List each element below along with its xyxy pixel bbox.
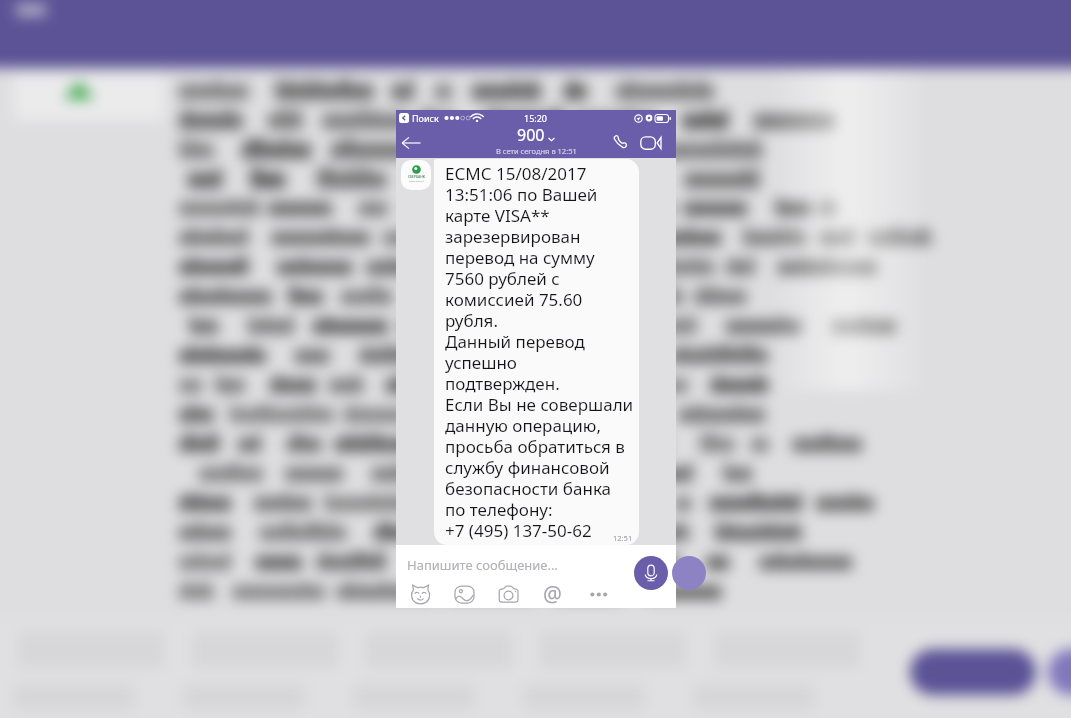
staticText: Поиск — [412, 112, 439, 124]
button[interactable]: Call — [608, 130, 632, 154]
button[interactable]: Video call — [638, 130, 664, 156]
button[interactable]: ЕСМС 15/08/2017 13:51:06 по Вашей карте … — [434, 159, 639, 545]
staticText: 900 — [517, 124, 545, 146]
button[interactable]: Gallery — [450, 580, 478, 608]
button[interactable]: More — [585, 580, 613, 608]
button[interactable]: Stickers — [406, 580, 434, 608]
staticText: Напишите сообщение... — [407, 556, 558, 574]
staticText: В сети сегодня в 12:51 — [496, 146, 577, 156]
button[interactable]: Mention — [538, 580, 566, 608]
button[interactable]: Camera — [494, 580, 522, 608]
button[interactable]: Send — [672, 556, 706, 590]
staticText: 15:20 — [524, 112, 548, 124]
staticText: СБЕРБАНК — [408, 175, 425, 179]
button[interactable]: Record voice message — [634, 556, 668, 590]
staticText: always with you — [409, 180, 424, 183]
staticText: 12:51 — [613, 533, 633, 543]
staticText: ЕСМС 15/08/2017 13:51:06 по Вашей карте … — [445, 162, 634, 542]
button[interactable]: Sberbank avatar — [401, 160, 431, 190]
staticText: @ — [543, 580, 562, 608]
button[interactable]: Back — [398, 130, 424, 156]
